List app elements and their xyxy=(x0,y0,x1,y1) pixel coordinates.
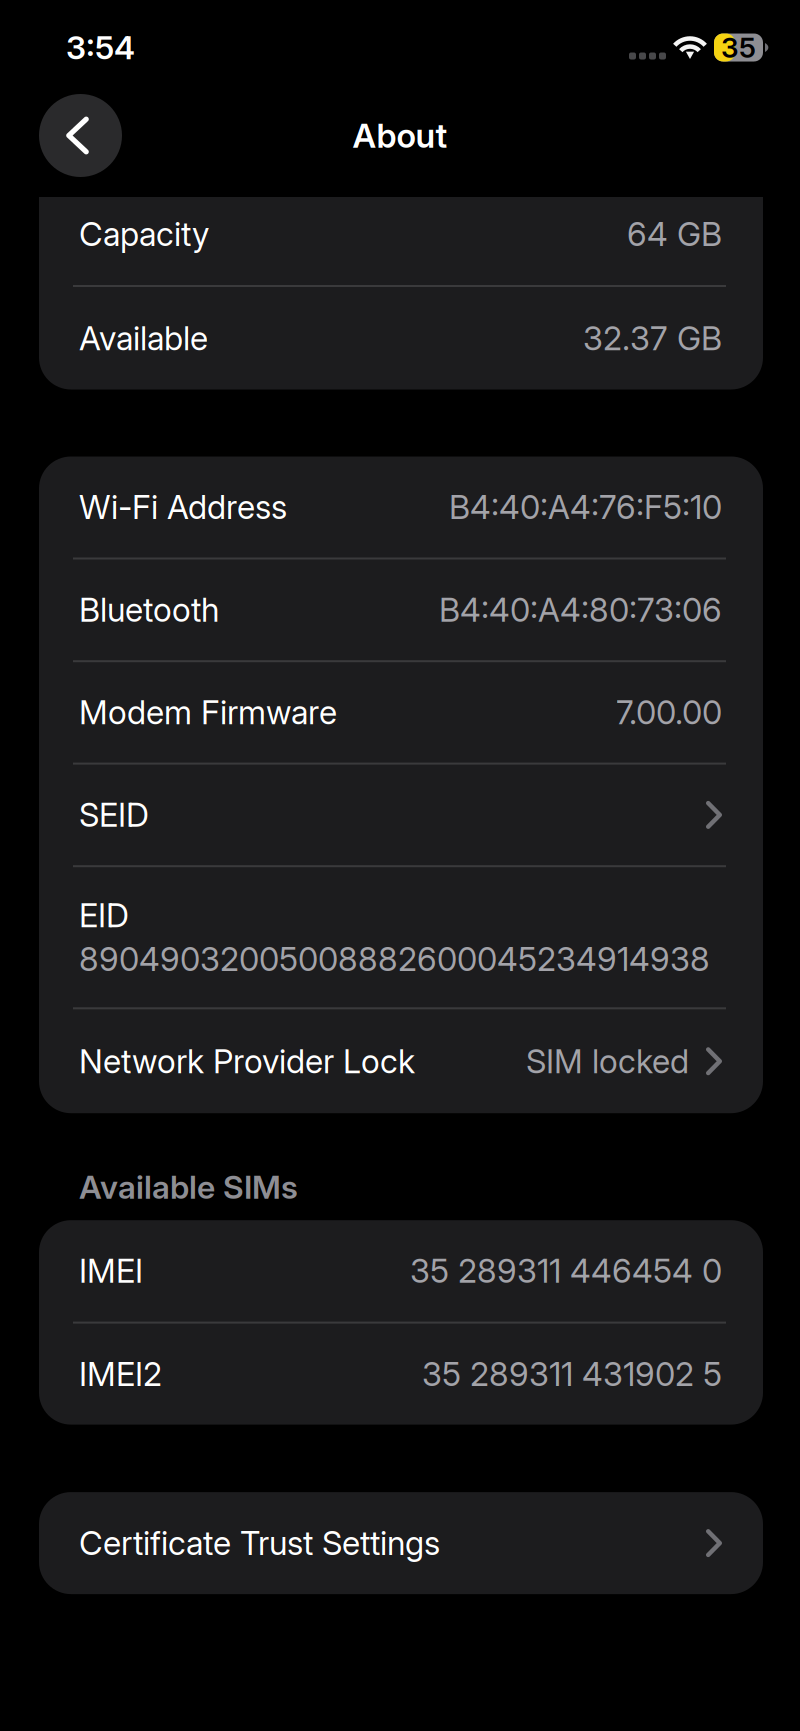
button[interactable]: Certificate Trust Settings xyxy=(39,1492,763,1594)
staticText: Modem Firmware xyxy=(79,693,337,732)
staticText: 32.37 GB xyxy=(583,318,722,358)
button[interactable]: SEID xyxy=(39,765,763,865)
button[interactable]: Back xyxy=(39,94,122,177)
button[interactable]: Available xyxy=(39,287,763,389)
button[interactable]: Wi-Fi Address xyxy=(39,456,763,557)
staticText: 35 289311 446454 0 xyxy=(410,1251,722,1291)
staticText: Capacity xyxy=(79,214,209,254)
button[interactable]: Bluetooth xyxy=(39,559,763,660)
button[interactable]: Network Provider Lock xyxy=(39,1009,763,1113)
staticText: About xyxy=(352,115,447,156)
button[interactable]: Capacity xyxy=(39,197,763,285)
staticText: SEID xyxy=(79,795,149,835)
staticText: Available SIMs xyxy=(79,1168,298,1206)
staticText: Bluetooth xyxy=(79,590,219,630)
button[interactable]: Modem Firmware xyxy=(39,662,763,763)
staticText: Wi-Fi Address xyxy=(79,487,287,527)
button[interactable]: EID xyxy=(39,867,763,1007)
staticText: Available xyxy=(79,318,208,358)
staticText: B4:40:A4:80:73:06 xyxy=(439,590,722,630)
staticText: IMEI2 xyxy=(79,1354,162,1394)
staticText: 35 289311 431902 5 xyxy=(422,1354,722,1394)
staticText: IMEI xyxy=(79,1251,143,1291)
button[interactable]: IMEI2 xyxy=(39,1324,763,1425)
staticText: 64 GB xyxy=(627,214,722,254)
staticText: 89049032005008882600045234914938 xyxy=(79,939,710,979)
staticText: 7.00.00 xyxy=(616,693,722,732)
button[interactable]: IMEI xyxy=(39,1220,763,1322)
staticText: 3:54 xyxy=(66,28,135,67)
staticText: 35 xyxy=(721,31,756,64)
staticText: Certificate Trust Settings xyxy=(79,1523,440,1563)
staticText: Network Provider Lock xyxy=(79,1041,415,1081)
staticText: B4:40:A4:76:F5:10 xyxy=(449,487,722,527)
staticText: EID xyxy=(79,896,129,935)
staticText: SIM locked xyxy=(526,1041,689,1081)
